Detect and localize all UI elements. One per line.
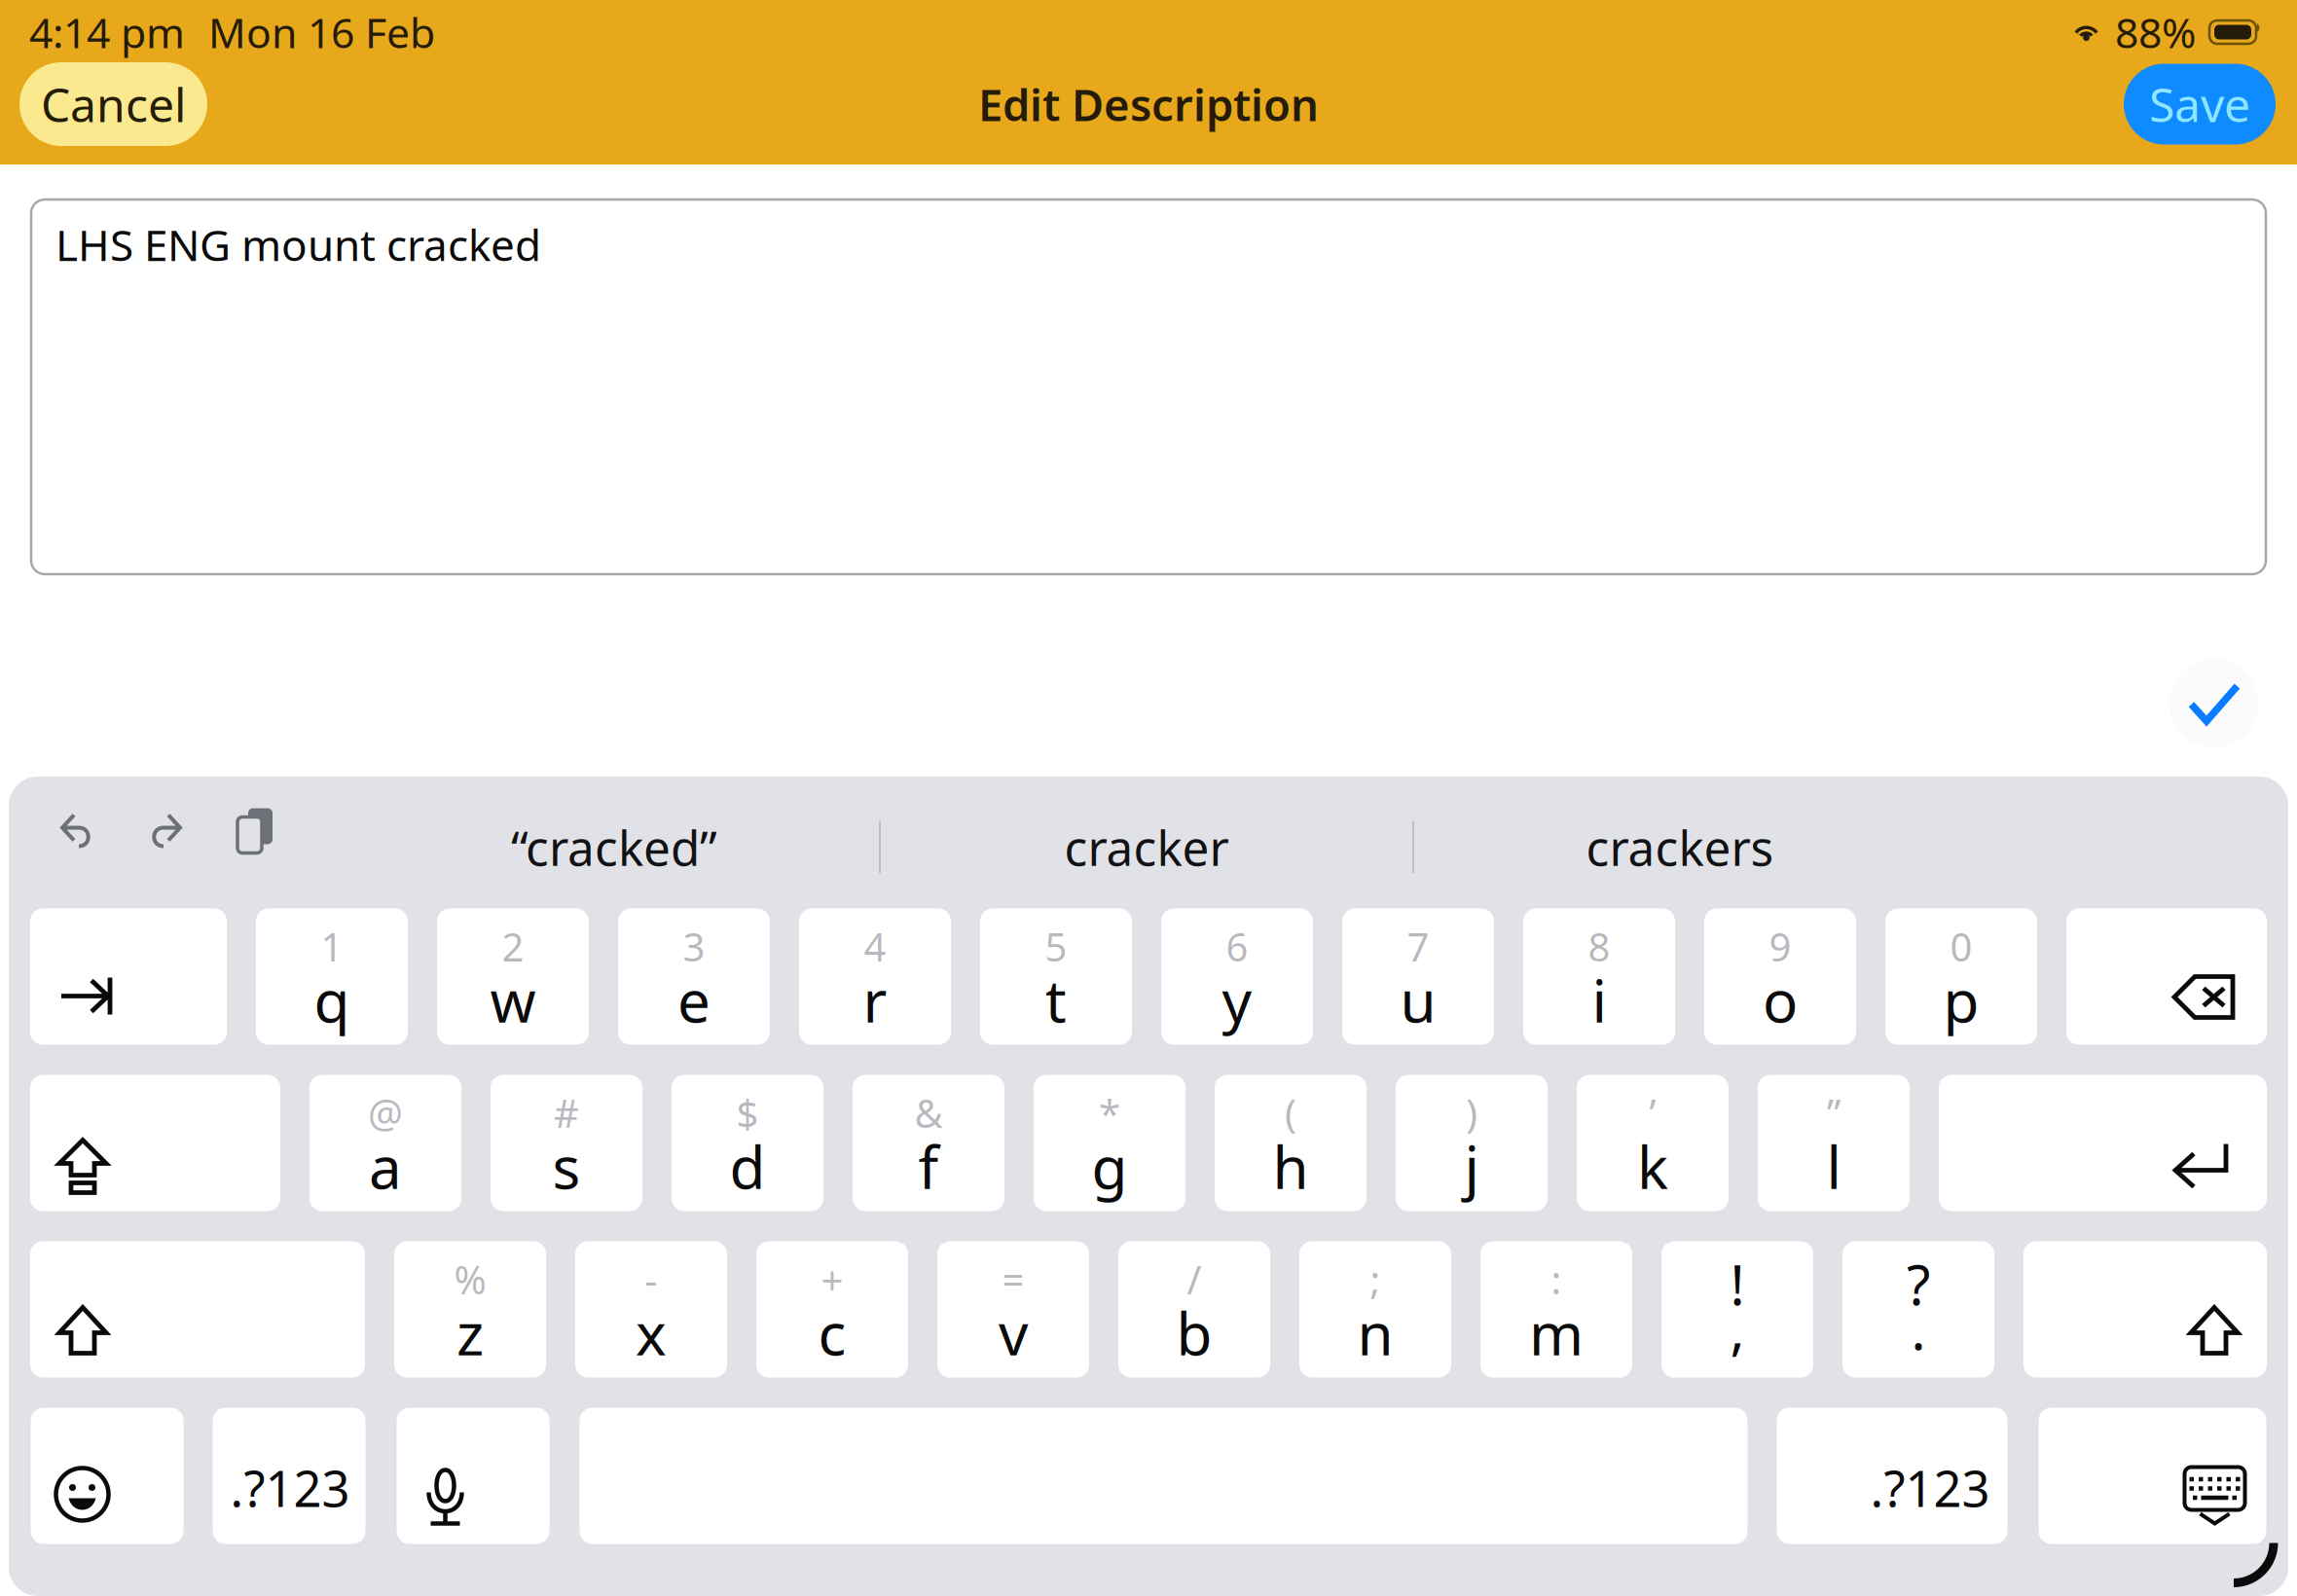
button[interactable] (397, 1408, 549, 1544)
button[interactable]: : (1480, 1241, 1632, 1378)
staticText: crackers (1586, 815, 1774, 879)
button[interactable]: Undo (60, 830, 93, 865)
staticText: Save (2149, 73, 2250, 135)
staticText: @ (368, 1087, 403, 1139)
staticText: u (1400, 961, 1436, 1039)
button[interactable]: ) (1396, 1075, 1548, 1211)
button[interactable] (2066, 908, 2267, 1045)
staticText: ! (1730, 1248, 1745, 1320)
staticText: v (999, 1294, 1028, 1372)
button[interactable]: 5 (980, 908, 1132, 1045)
staticText: 88% (2115, 5, 2196, 60)
button[interactable]: .?123 (1777, 1408, 2007, 1544)
staticText: - (645, 1253, 657, 1305)
button[interactable]: - (575, 1241, 727, 1378)
staticText: d (729, 1128, 766, 1205)
staticText: 2 (502, 921, 524, 972)
staticText: $ (736, 1087, 759, 1139)
button[interactable]: cracker (881, 798, 1412, 896)
button[interactable]: / (1118, 1241, 1270, 1378)
staticText: 9 (1769, 921, 1791, 972)
staticText: % (454, 1253, 486, 1305)
staticText: .?123 (1870, 1455, 1990, 1521)
staticText: 4 (864, 921, 886, 972)
button[interactable]: “cracked” (349, 798, 879, 896)
button[interactable]: # (491, 1075, 642, 1211)
button[interactable] (2024, 1241, 2267, 1378)
staticText: t (1045, 961, 1067, 1039)
staticText: n (1357, 1294, 1393, 1372)
staticText: Cancel (41, 73, 186, 135)
staticText: + (821, 1253, 843, 1305)
button[interactable]: * (1034, 1075, 1185, 1211)
staticText: k (1637, 1128, 1668, 1205)
button[interactable]: ’ (1577, 1075, 1729, 1211)
staticText: 3 (683, 921, 705, 972)
staticText: “cracked” (511, 815, 717, 879)
button[interactable] (2039, 1408, 2266, 1544)
staticText: . (1911, 1293, 1926, 1365)
button[interactable]: Save (2124, 64, 2276, 145)
button[interactable]: @ (310, 1075, 461, 1211)
button[interactable]: 6 (1161, 908, 1313, 1045)
staticText: o (1763, 961, 1798, 1039)
button[interactable]: crackers (1414, 798, 1946, 896)
button[interactable] (30, 1075, 280, 1211)
staticText: r (863, 961, 887, 1039)
button[interactable]: ( (1215, 1075, 1367, 1211)
staticText: 8 (1588, 921, 1610, 972)
button[interactable]: 4 (799, 908, 951, 1045)
staticText: ? (1907, 1248, 1930, 1320)
staticText: LHS ENG mount cracked (55, 216, 541, 273)
button[interactable]: 1 (256, 908, 408, 1045)
staticText: c (818, 1294, 846, 1372)
button[interactable]: % (394, 1241, 546, 1378)
staticText: / (1187, 1253, 1202, 1305)
button[interactable] (30, 908, 227, 1045)
staticText: w (490, 961, 536, 1039)
button[interactable] (1939, 1075, 2267, 1211)
button[interactable]: Done (2169, 659, 2259, 748)
button[interactable]: 9 (1704, 908, 1856, 1045)
staticText: 6 (1226, 921, 1248, 972)
button[interactable]: ! (1661, 1241, 1813, 1378)
button[interactable]: 7 (1342, 908, 1494, 1045)
staticText: , (1730, 1293, 1745, 1365)
staticText: p (1943, 961, 1979, 1039)
staticText: g (1092, 1128, 1128, 1205)
staticText: 1 (321, 921, 343, 972)
staticText: * (1099, 1087, 1120, 1139)
button[interactable]: 8 (1523, 908, 1675, 1045)
staticText: l (1826, 1128, 1841, 1205)
button[interactable]: Paste (237, 825, 273, 870)
staticText: 4:14 pm (29, 5, 185, 60)
button[interactable]: = (937, 1241, 1089, 1378)
button[interactable]: Cancel (19, 62, 207, 146)
staticText: ) (1466, 1087, 1477, 1139)
staticText: b (1176, 1294, 1212, 1372)
button[interactable]: Hide keyboard (2232, 1541, 2280, 1590)
staticText: m (1529, 1294, 1584, 1372)
button[interactable]: .?123 (213, 1408, 365, 1544)
button[interactable] (31, 1408, 183, 1544)
button[interactable]: + (756, 1241, 908, 1378)
staticText: 5 (1045, 921, 1067, 972)
button[interactable]: ; (1299, 1241, 1451, 1378)
staticText: a (369, 1128, 402, 1205)
button[interactable]: & (853, 1075, 1004, 1211)
button[interactable]: $ (672, 1075, 823, 1211)
staticText: e (677, 961, 711, 1039)
staticText: ” (1827, 1087, 1841, 1139)
button[interactable]: Redo (149, 830, 182, 865)
staticText: i (1592, 961, 1606, 1039)
staticText: ’ (1649, 1087, 1656, 1139)
button[interactable]: ? (1842, 1241, 1994, 1378)
button[interactable] (30, 1241, 365, 1378)
staticText: z (456, 1294, 484, 1372)
button[interactable]: 3 (618, 908, 770, 1045)
button[interactable]: 0 (1885, 908, 2037, 1045)
button[interactable]: ” (1758, 1075, 1910, 1211)
button[interactable]: 2 (437, 908, 589, 1045)
staticText: y (1222, 961, 1252, 1039)
